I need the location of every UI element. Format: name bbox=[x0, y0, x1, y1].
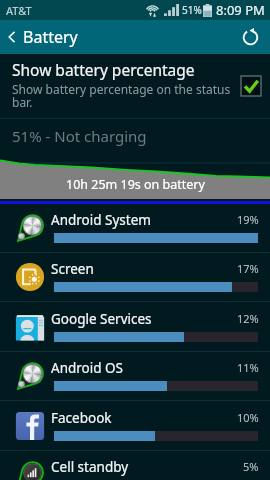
button[interactable]: Refresh bbox=[236, 23, 264, 51]
staticText: Screen bbox=[51, 260, 94, 278]
button[interactable]: Battery bbox=[0, 26, 86, 48]
staticText: Battery bbox=[23, 26, 78, 48]
staticText: Cell standby bbox=[51, 458, 129, 476]
staticText: 5% bbox=[243, 459, 259, 474]
staticText: Show battery percentage bbox=[12, 59, 195, 80]
staticText: 10h 25m 19s on battery bbox=[66, 176, 205, 193]
staticText: AT&T bbox=[6, 3, 32, 18]
button[interactable]: Google Services bbox=[0, 303, 270, 352]
staticText: Android OS bbox=[51, 359, 123, 377]
staticText: Show battery percentage on the status ba… bbox=[12, 81, 232, 111]
button[interactable]: Android OS bbox=[0, 352, 270, 401]
staticText: 12% bbox=[237, 311, 259, 326]
staticText: 51% bbox=[182, 3, 202, 17]
staticText: Facebook bbox=[51, 409, 112, 427]
button[interactable]: Cell standby bbox=[0, 451, 270, 480]
staticText: Google Services bbox=[51, 310, 152, 328]
button[interactable]: Android System bbox=[0, 204, 270, 253]
staticText: Android System bbox=[51, 211, 151, 229]
staticText: 51% - Not charging bbox=[12, 126, 147, 146]
staticText: 8:09 PM bbox=[216, 1, 265, 19]
staticText: 17% bbox=[237, 261, 259, 276]
button[interactable]: Facebook bbox=[0, 402, 270, 451]
staticText: 11% bbox=[237, 360, 259, 375]
staticText: 19% bbox=[237, 212, 259, 227]
button[interactable]: Screen bbox=[0, 253, 270, 302]
button[interactable]: Show battery percentage bbox=[0, 54, 270, 118]
staticText: 10% bbox=[237, 410, 259, 425]
